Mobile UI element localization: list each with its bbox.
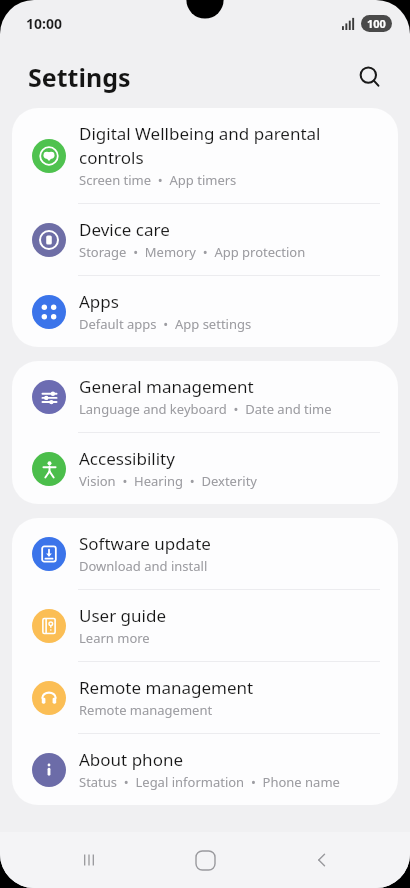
button[interactable]: Remote management [12,662,398,733]
staticText: Download and install [79,557,208,575]
staticText: 10:00 [26,14,62,33]
button[interactable]: Search [354,61,386,93]
button[interactable]: Digital Wellbeing and parental controls [12,108,398,203]
staticText: 100 [367,16,386,31]
button[interactable]: User guide [12,590,398,661]
staticText: About phone [79,748,184,771]
button[interactable]: About phone [12,734,398,805]
staticText: Vision • Hearing • Dexterity [79,472,257,490]
staticText: Device care [79,218,170,241]
staticText: Accessibility [79,447,175,470]
staticText: Settings [28,60,131,94]
button[interactable]: Device care [12,204,398,275]
staticText: Screen time • App timers [79,171,237,189]
button[interactable]: Recents [61,832,117,888]
button[interactable]: General management [12,361,398,432]
staticText: Remote management [79,676,254,699]
staticText: Software update [79,532,211,555]
staticText: Status • Legal information • Phone name [79,773,340,791]
staticText: General management [79,375,254,398]
staticText: Learn more [79,629,150,647]
staticText: Apps [79,290,119,313]
button[interactable]: Software update [12,518,398,589]
button[interactable]: Accessibility [12,433,398,504]
staticText: Default apps • App settings [79,315,252,333]
staticText: User guide [79,604,166,627]
button[interactable]: Back [294,832,350,888]
button[interactable]: Home [177,832,233,888]
staticText: Language and keyboard • Date and time [79,400,332,418]
staticText: Digital Wellbeing and parental controls [79,122,321,169]
button[interactable]: Apps [12,276,398,347]
staticText: Remote management [79,701,213,719]
staticText: Storage • Memory • App protection [79,243,306,261]
